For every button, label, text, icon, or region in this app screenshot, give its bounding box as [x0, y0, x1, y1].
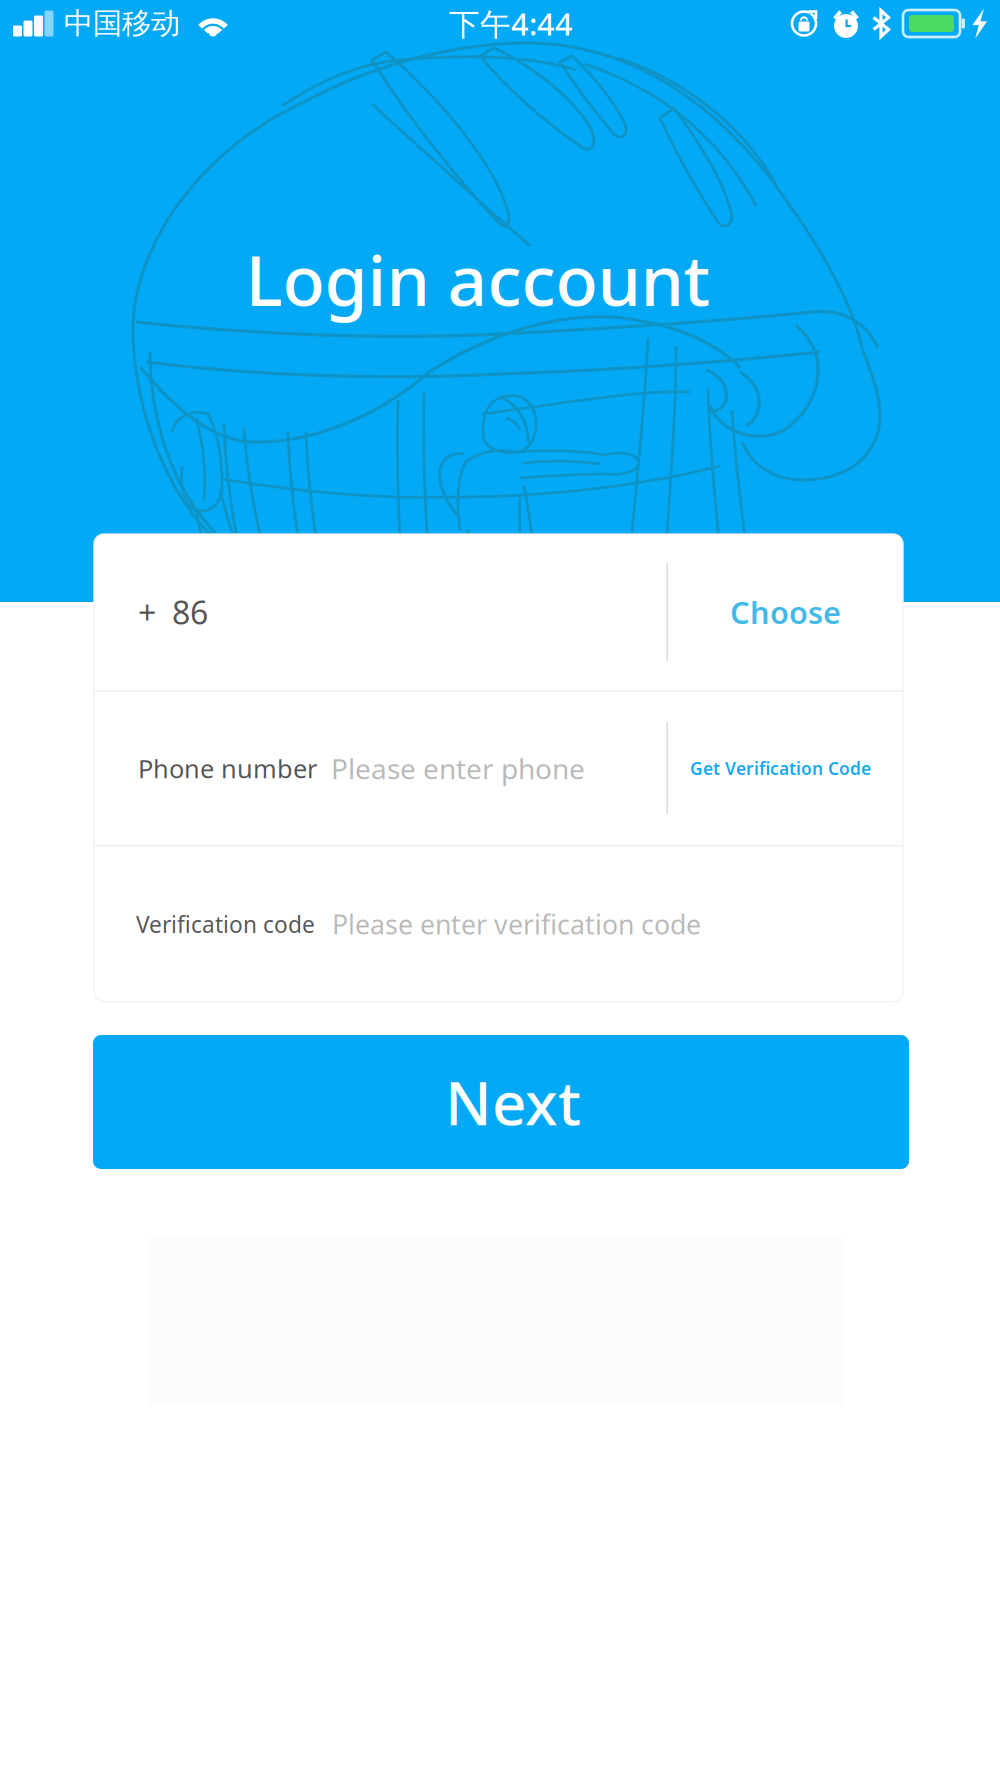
button[interactable]: + 86 — [94, 534, 666, 690]
staticText: Please enter verification code — [332, 906, 701, 942]
button[interactable]: Next — [93, 1035, 909, 1169]
staticText: 中国移动 — [64, 5, 180, 41]
staticText: Login account — [245, 233, 710, 325]
staticText: Next — [445, 1062, 581, 1142]
staticText: Get Verification Code — [690, 757, 871, 780]
staticText: Please enter phone — [331, 750, 585, 787]
button[interactable]: Phone number — [94, 692, 666, 845]
button[interactable]: Get Verification Code — [668, 692, 903, 845]
staticText: Verification code — [136, 909, 315, 939]
staticText: Choose — [730, 592, 841, 632]
staticText: 下午4:44 — [449, 3, 573, 44]
button[interactable]: Verification code — [94, 847, 903, 1002]
staticText: + 86 — [138, 591, 208, 633]
button[interactable]: Choose — [668, 534, 903, 690]
staticText: Phone number — [138, 751, 317, 785]
